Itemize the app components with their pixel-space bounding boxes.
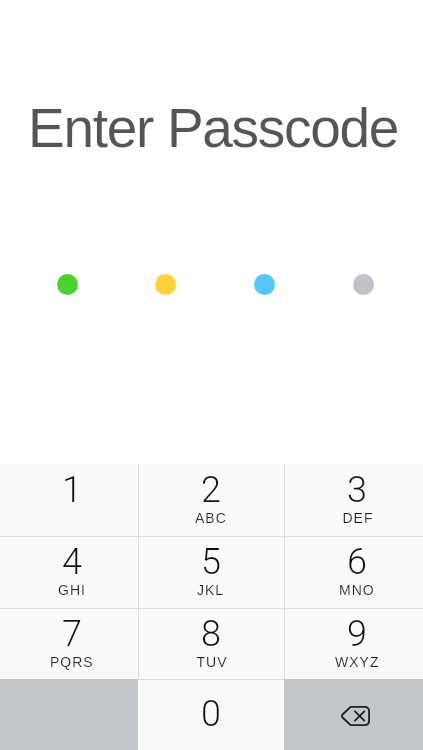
staticText: 2 — [201, 469, 221, 511]
staticText: TUV — [196, 654, 227, 670]
staticText: 1 — [62, 469, 82, 511]
staticText: ABC — [195, 510, 227, 526]
staticText: 3 — [347, 469, 367, 511]
staticText: GHI — [58, 582, 86, 598]
button[interactable]: 5 — [138, 536, 284, 607]
staticText: 0 — [201, 693, 221, 735]
staticText: 7 — [62, 613, 82, 655]
button[interactable]: 4 — [0, 536, 138, 607]
button[interactable]: 6 — [284, 536, 423, 607]
staticText: 9 — [347, 613, 367, 655]
button[interactable]: 8 — [138, 608, 284, 680]
staticText: WXYZ — [335, 654, 380, 670]
staticText: PQRS — [50, 654, 94, 670]
button[interactable]: Delete — [284, 679, 423, 750]
button[interactable]: 9 — [284, 608, 423, 680]
button[interactable]: 2 — [138, 464, 284, 536]
staticText: 8 — [201, 613, 221, 655]
button[interactable]: 7 — [0, 608, 138, 680]
staticText: 6 — [347, 541, 367, 583]
staticText: DEF — [342, 510, 373, 526]
staticText: JKL — [197, 582, 225, 598]
button[interactable]: 1 — [0, 464, 138, 536]
button[interactable]: 3 — [284, 464, 423, 536]
staticText: 5 — [201, 541, 221, 583]
staticText: Enter Passcode — [28, 97, 399, 158]
button[interactable]: 0 — [138, 679, 284, 750]
staticText: MNO — [339, 582, 375, 598]
staticText: 4 — [62, 541, 82, 583]
